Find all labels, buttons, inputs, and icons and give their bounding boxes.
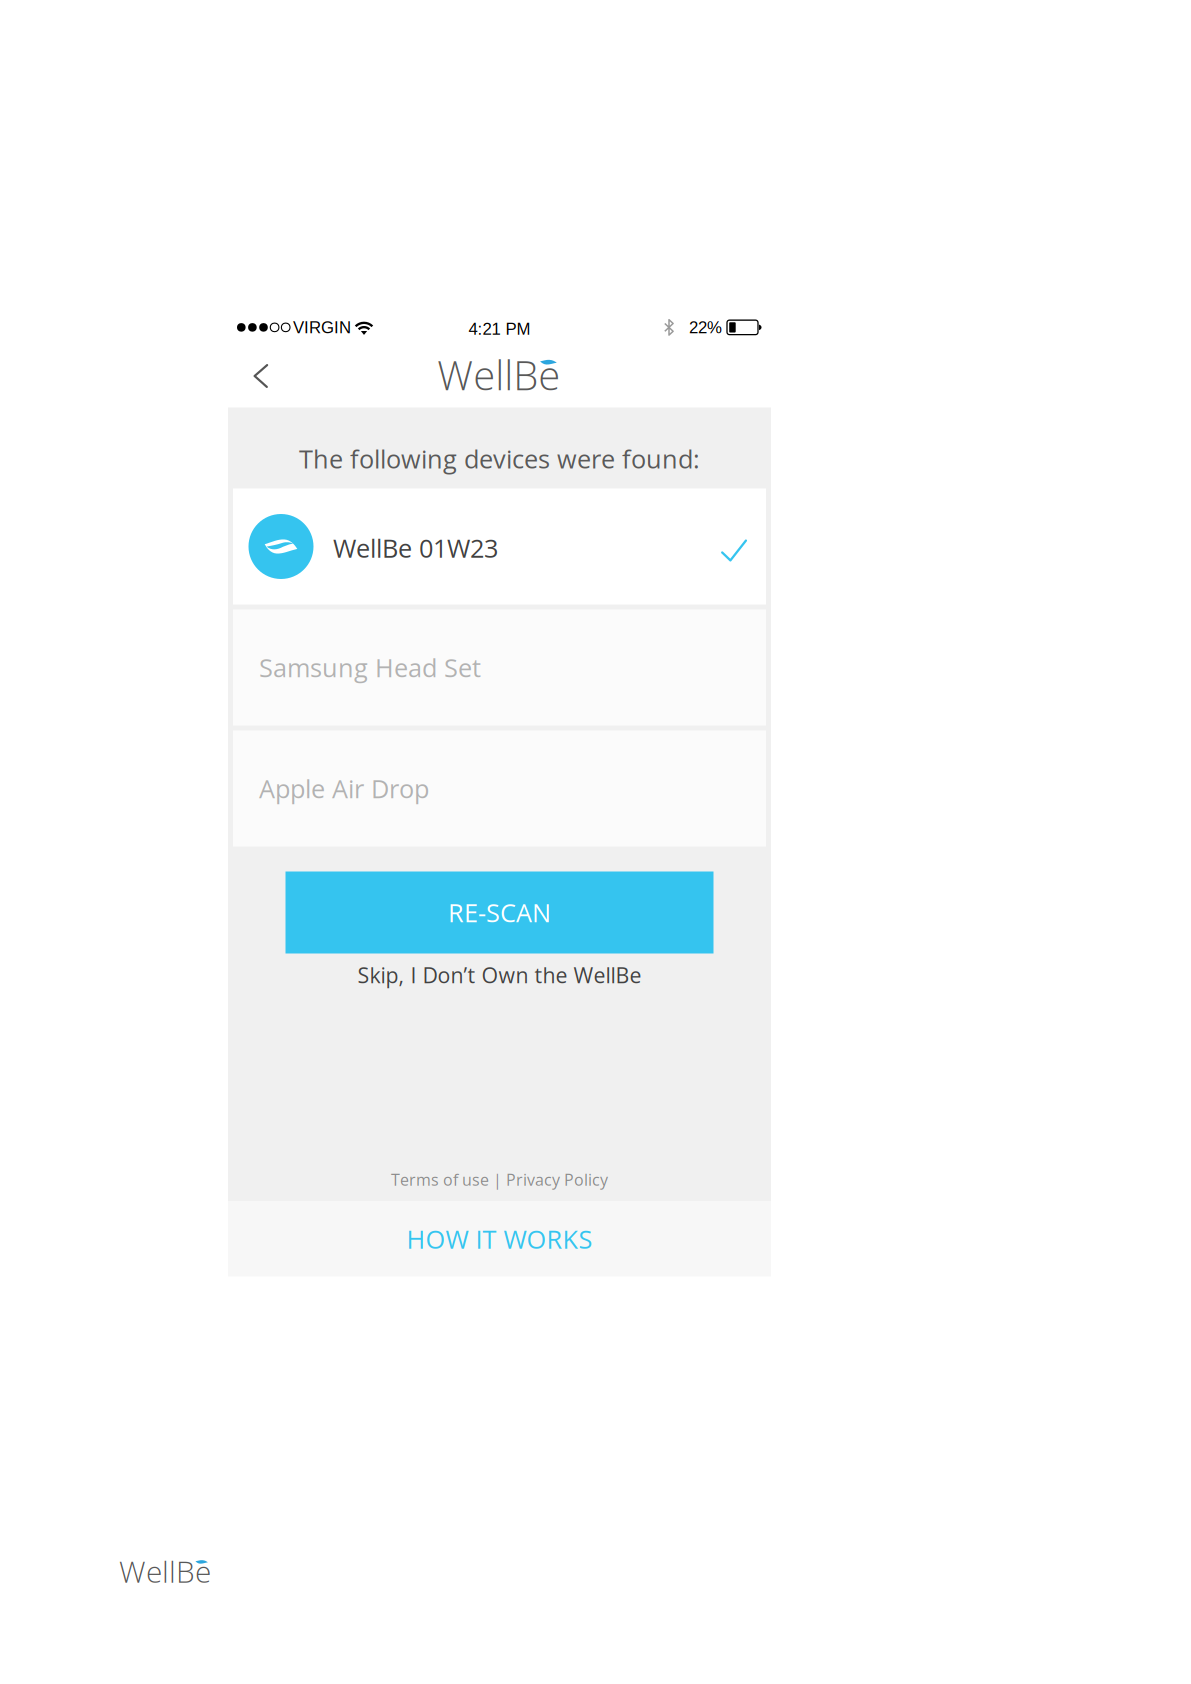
- button[interactable]: Samsung Head Set: [233, 609, 766, 725]
- staticText: 4:21 PM: [468, 320, 530, 338]
- staticText: VIRGIN: [293, 318, 351, 337]
- staticText: Apple Air Drop: [259, 771, 429, 806]
- button[interactable]: RE-SCAN: [285, 871, 713, 953]
- staticText: WellBe: [119, 1551, 211, 1591]
- button[interactable]: WellBe 01W23: [233, 488, 766, 604]
- staticText: Terms of use | Privacy Policy: [391, 1169, 608, 1190]
- staticText: 22%: [689, 318, 722, 337]
- button[interactable]: Back: [228, 349, 294, 407]
- staticText: RE-SCAN: [448, 895, 551, 930]
- button[interactable]: Terms of use | Privacy Policy: [228, 1162, 771, 1196]
- staticText: WellBe: [437, 347, 560, 402]
- button[interactable]: Apple Air Drop: [233, 730, 766, 846]
- staticText: HOW IT WORKS: [406, 1222, 592, 1256]
- staticText: Samsung Head Set: [259, 650, 481, 685]
- staticText: Skip, I Don’t Own the WellBe: [357, 960, 641, 990]
- staticText: WellBe 01W23: [333, 531, 498, 565]
- button[interactable]: HOW IT WORKS: [228, 1201, 771, 1276]
- button[interactable]: Skip, I Don’t Own the WellBe: [228, 953, 771, 996]
- staticText: The following devices were found:: [299, 441, 700, 476]
